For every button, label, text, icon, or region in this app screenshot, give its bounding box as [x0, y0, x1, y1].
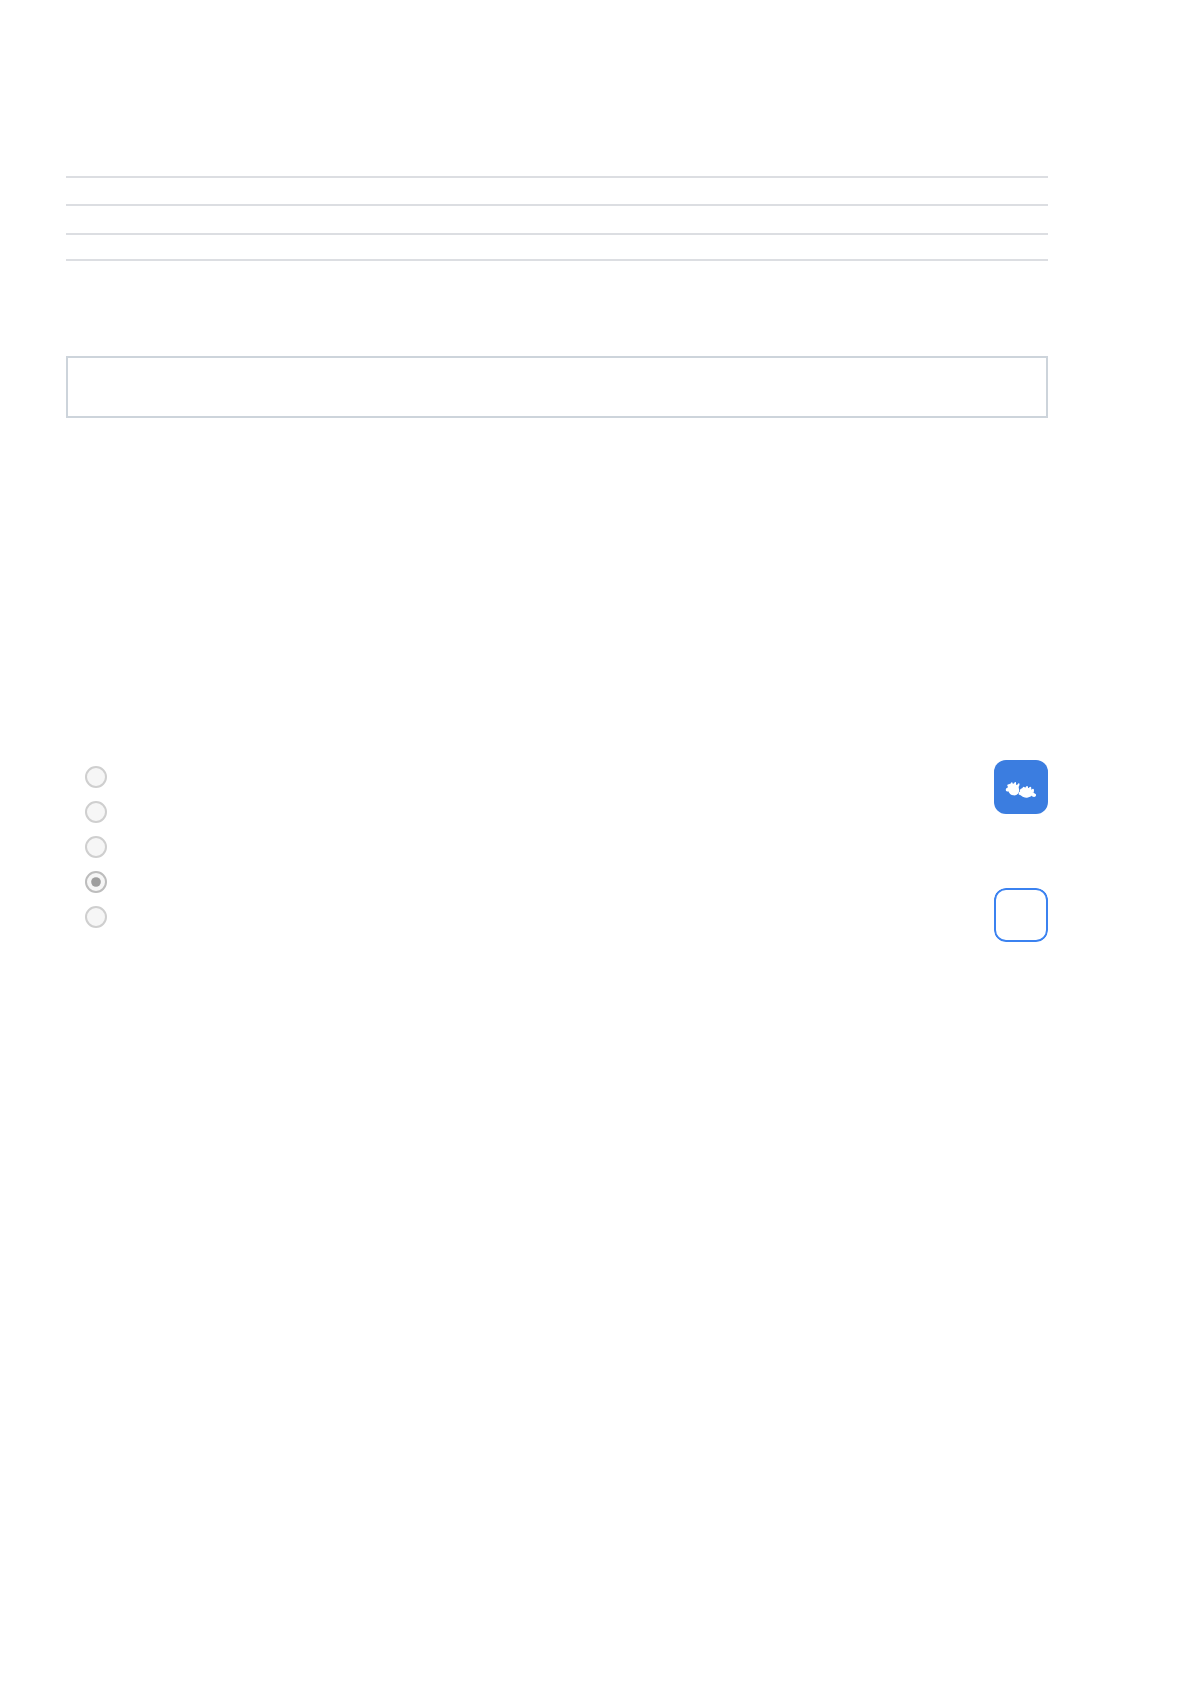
button[interactable]: Option	[79, 830, 113, 864]
button[interactable]: Toggle option	[994, 888, 1048, 942]
button[interactable]	[66, 356, 1048, 418]
button[interactable]: Option	[79, 900, 113, 934]
button[interactable]: Selected option	[79, 865, 113, 899]
button[interactable]: Option	[79, 760, 113, 794]
button[interactable]: Option	[79, 795, 113, 829]
button[interactable]: Sign language	[994, 760, 1048, 814]
